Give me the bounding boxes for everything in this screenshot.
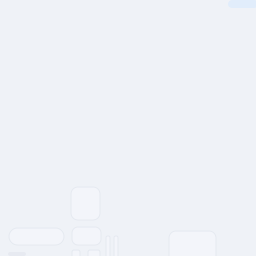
- button[interactable]: Secondary card: [72, 227, 101, 245]
- button[interactable]: Chip one: [72, 250, 80, 256]
- button[interactable]: Chip two: [88, 250, 100, 256]
- button[interactable]: Primary action: [9, 228, 64, 245]
